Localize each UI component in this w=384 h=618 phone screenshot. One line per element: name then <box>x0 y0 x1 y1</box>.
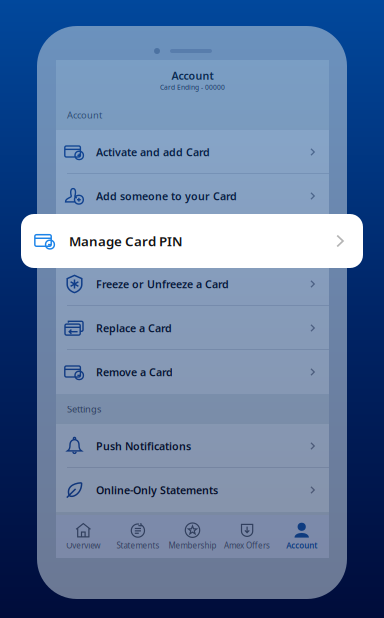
staticText: Remove a Card <box>96 365 173 379</box>
staticText: Add someone to your Card <box>96 189 237 203</box>
button[interactable]: Freeze or Unfreeze a Card <box>56 262 329 306</box>
button[interactable]: Overview <box>56 515 111 558</box>
staticText: Push Notifications <box>96 439 191 453</box>
staticText: Statements <box>116 540 159 551</box>
button[interactable]: Activate and add Card <box>56 130 329 174</box>
staticText: Activate and add Card <box>96 145 210 159</box>
staticText: Freeze or Unfreeze a Card <box>96 277 229 291</box>
button[interactable]: Online-Only Statements <box>56 468 329 512</box>
button[interactable]: Manage Card PIN <box>56 218 329 262</box>
staticText: Account <box>286 540 317 551</box>
button[interactable]: Amex Offers <box>220 515 274 558</box>
staticText: Account <box>67 109 102 121</box>
button[interactable]: Membership <box>165 515 220 558</box>
staticText: Online-Only Statements <box>96 483 218 497</box>
button[interactable]: Remove a Card <box>56 350 329 394</box>
staticText: Manage Card PIN <box>96 233 187 247</box>
staticText: Amex Offers <box>224 540 270 551</box>
staticText: Account <box>171 68 213 83</box>
button[interactable]: Replace a Card <box>56 306 329 350</box>
staticText: Card Ending - 00000 <box>160 83 225 92</box>
button[interactable]: Manage Card PIN <box>21 214 363 268</box>
button[interactable]: Push Notifications <box>56 424 329 468</box>
staticText: Membership <box>168 540 216 551</box>
button[interactable]: Add someone to your Card <box>56 174 329 218</box>
staticText: Settings <box>67 403 101 415</box>
staticText: Replace a Card <box>96 321 172 335</box>
staticText: Manage Card PIN <box>69 232 183 250</box>
button[interactable]: Account <box>274 515 329 558</box>
staticText: Overview <box>66 540 100 551</box>
button[interactable]: Statements <box>111 515 165 558</box>
